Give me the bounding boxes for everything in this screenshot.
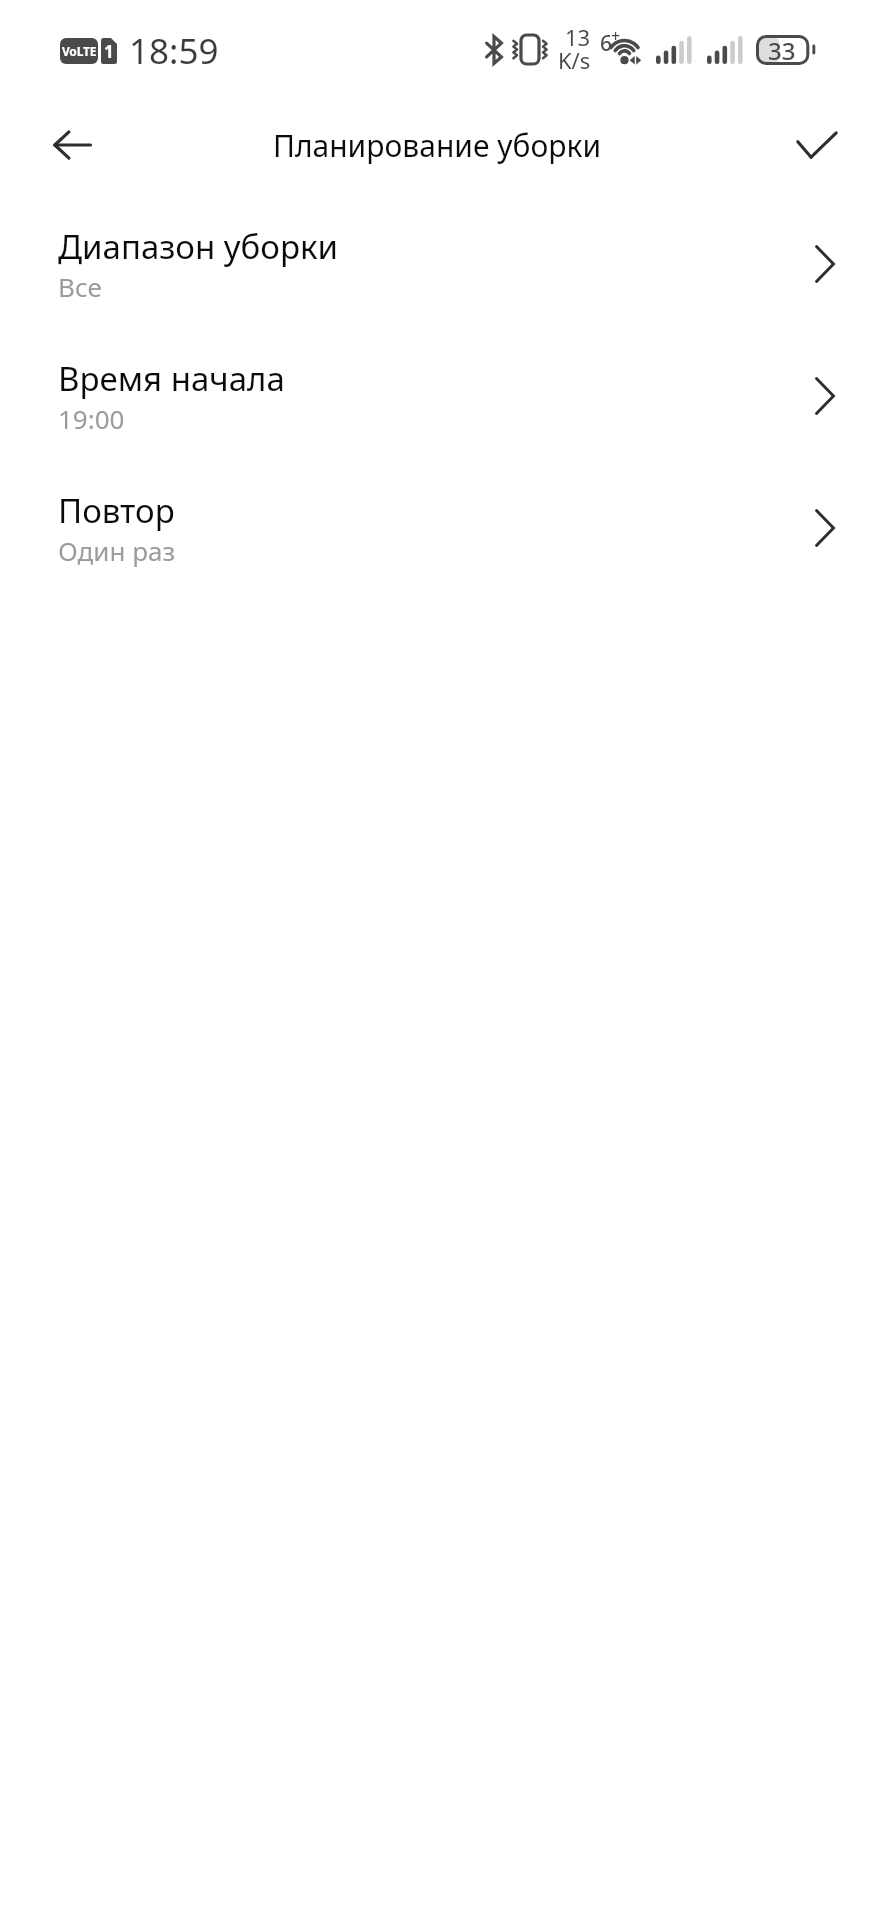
staticText: 33 <box>768 34 796 64</box>
staticText: Диапазон уборки <box>58 224 338 269</box>
staticText: 6 <box>600 29 613 58</box>
staticText: Один раз <box>58 533 176 568</box>
button[interactable]: Диапазон уборки <box>0 203 874 335</box>
button[interactable]: Повтор <box>0 467 874 599</box>
button[interactable]: Время начала <box>0 335 874 467</box>
staticText: K/s <box>558 45 591 75</box>
staticText: Все <box>58 269 102 304</box>
staticText: Повтор <box>58 488 175 533</box>
staticText: 13 <box>565 22 591 52</box>
staticText: Планирование уборки <box>0 125 874 166</box>
staticText: 19:00 <box>58 401 125 436</box>
staticText: 1 <box>104 40 114 63</box>
button[interactable]: Confirm <box>775 103 859 187</box>
staticText: 18:59 <box>129 27 219 75</box>
button[interactable]: Back <box>30 103 114 187</box>
staticText: VoLTE <box>62 43 97 59</box>
staticText: Время начала <box>58 356 285 401</box>
staticText: + <box>611 25 621 47</box>
